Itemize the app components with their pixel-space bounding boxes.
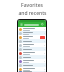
button[interactable]: Menu bbox=[20, 23, 23, 26]
button[interactable]: Menu bbox=[18, 22, 46, 27]
staticText: and recents bbox=[18, 10, 47, 17]
button[interactable] bbox=[18, 71, 46, 72]
button[interactable] bbox=[18, 59, 46, 63]
button[interactable] bbox=[18, 27, 46, 31]
button[interactable] bbox=[18, 31, 46, 35]
staticText: Favorites bbox=[21, 2, 43, 9]
button[interactable] bbox=[18, 67, 46, 71]
button[interactable] bbox=[18, 43, 46, 47]
button[interactable]: Delete bbox=[18, 35, 46, 39]
button[interactable]: Search bbox=[41, 23, 44, 26]
button[interactable] bbox=[18, 47, 46, 51]
button[interactable] bbox=[18, 51, 46, 55]
button[interactable] bbox=[18, 55, 46, 59]
button[interactable] bbox=[18, 63, 46, 67]
button[interactable]: Delete bbox=[40, 36, 45, 39]
button[interactable] bbox=[18, 39, 46, 43]
